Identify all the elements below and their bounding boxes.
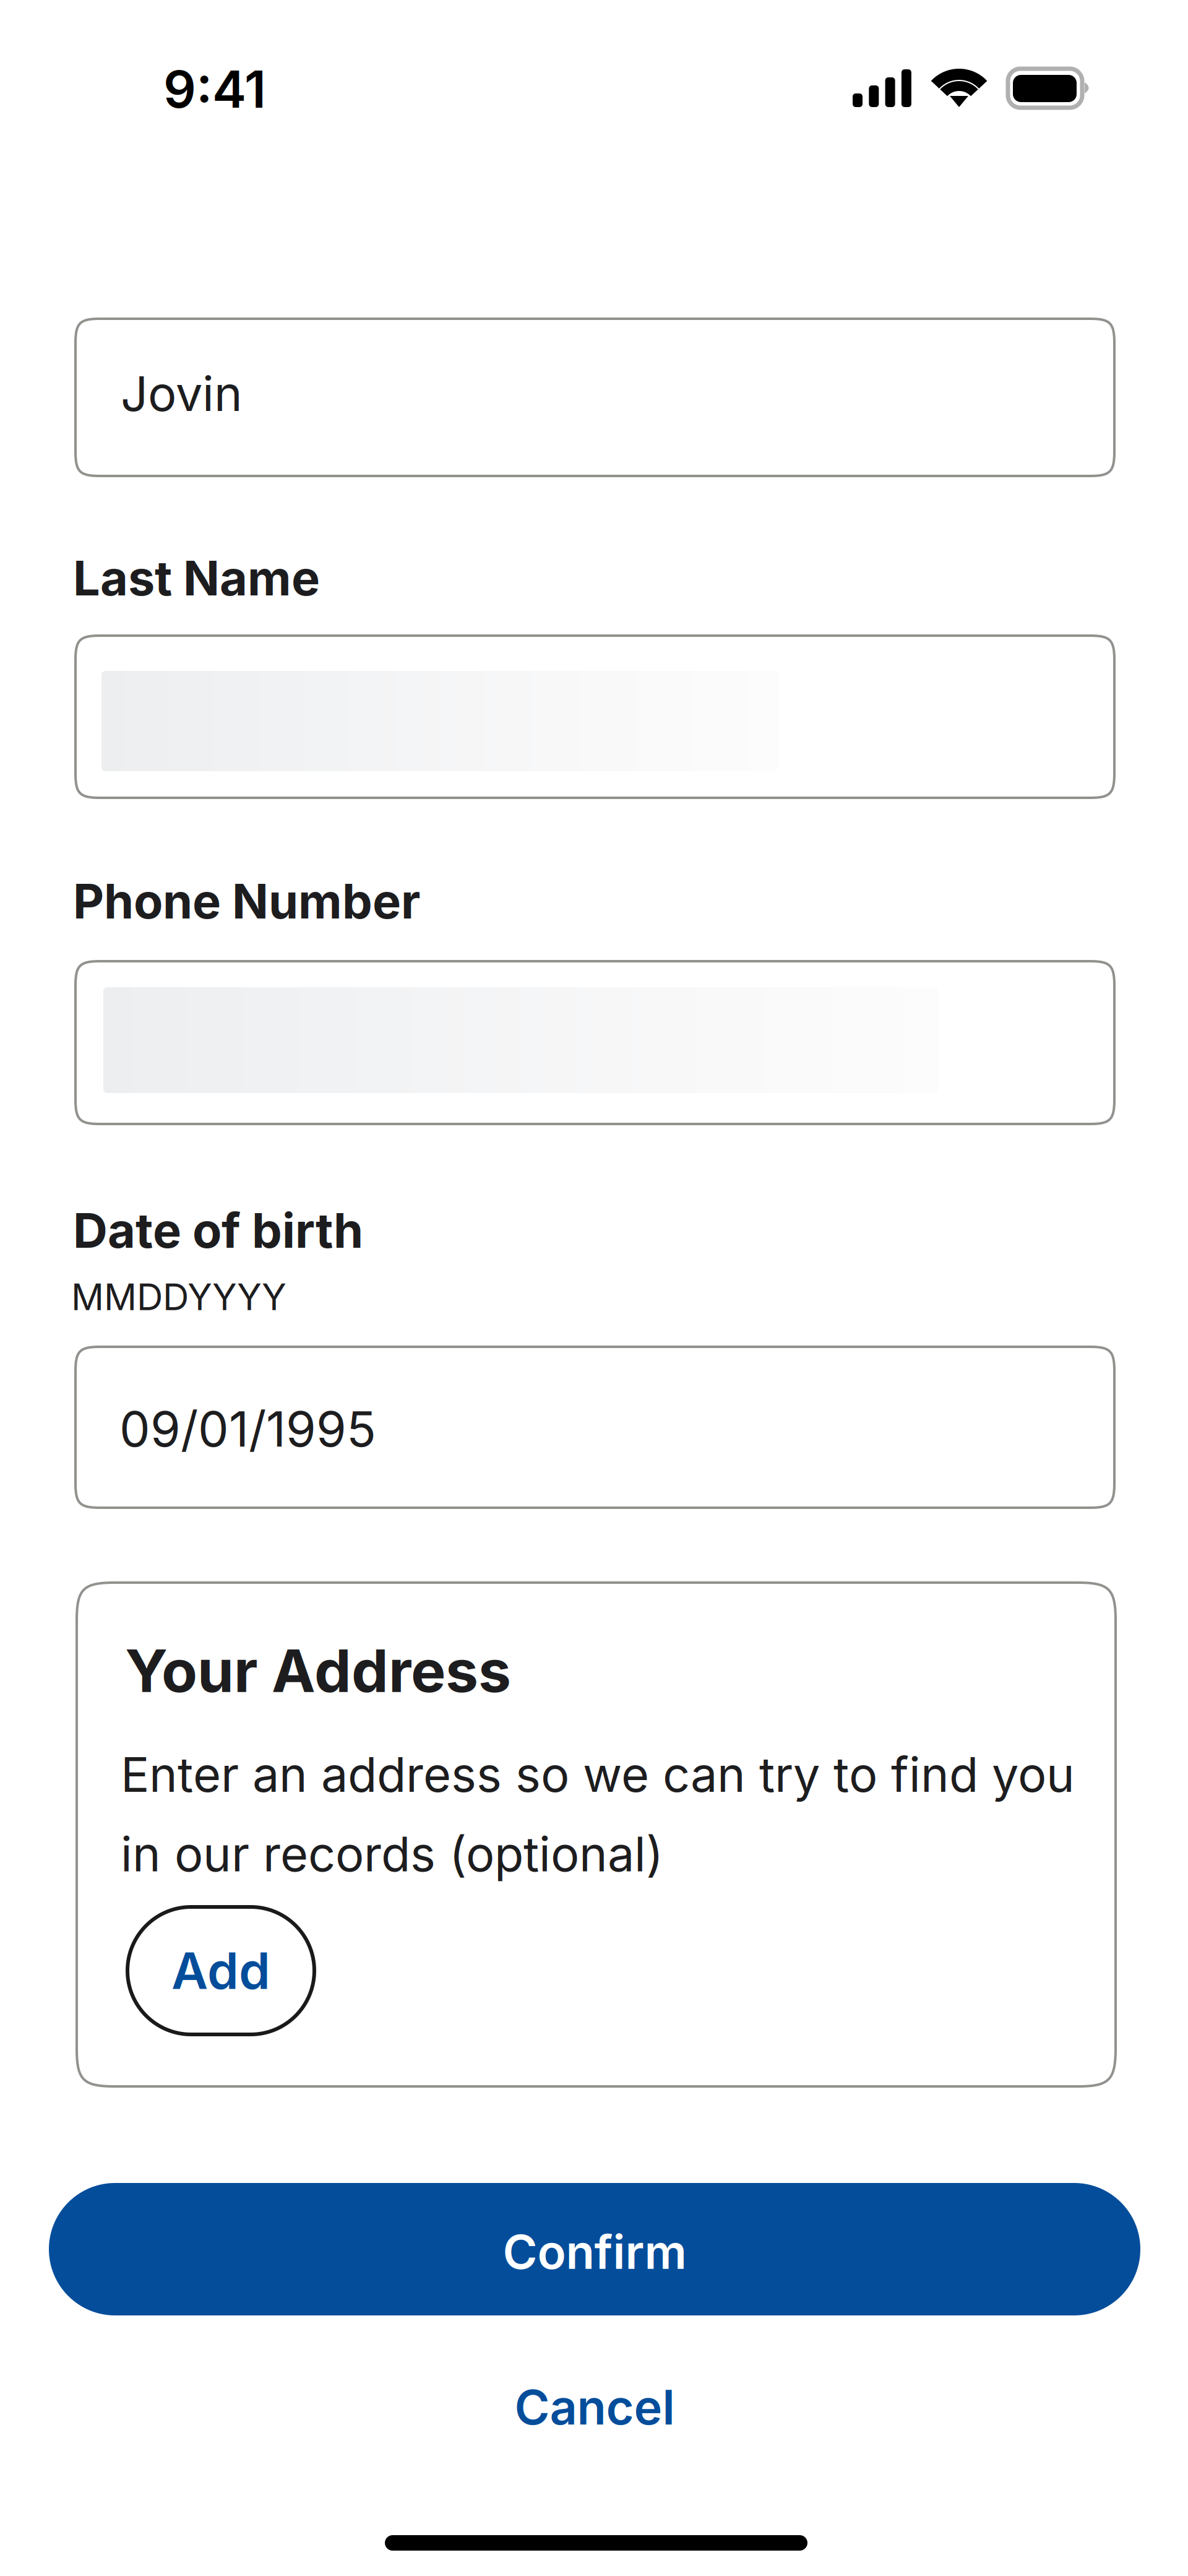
staticText: Phone Number xyxy=(73,872,420,930)
button[interactable]: Last Name xyxy=(74,634,1116,799)
button[interactable]: Confirm xyxy=(49,2183,1140,2315)
staticText: Enter an address so we can try to find y… xyxy=(121,1745,1075,1803)
staticText: Last Name xyxy=(73,549,320,607)
staticText: Date of birth xyxy=(73,1201,363,1259)
button[interactable]: Cancel xyxy=(49,2370,1140,2444)
staticText: 9:41 xyxy=(163,58,266,120)
staticText: MMDDYYYY xyxy=(71,1275,286,1319)
staticText: Confirm xyxy=(503,2223,687,2280)
button[interactable]: Date of birth xyxy=(74,1346,1116,1509)
staticText: Your Address xyxy=(125,1635,511,1706)
staticText: Add xyxy=(171,1940,270,2001)
button[interactable]: Add xyxy=(127,1907,314,2034)
staticText: 09/01/1995 xyxy=(119,1399,376,1458)
button[interactable]: First Name xyxy=(74,318,1116,477)
staticText: in our records (optional) xyxy=(121,1825,663,1883)
button[interactable]: Phone Number xyxy=(74,960,1116,1125)
staticText: Jovin xyxy=(121,365,243,422)
staticText: Cancel xyxy=(514,2378,675,2436)
